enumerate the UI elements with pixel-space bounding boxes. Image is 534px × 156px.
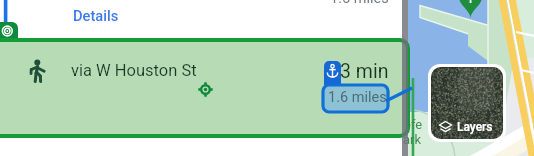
staticText: 1.6 miles xyxy=(328,89,387,106)
button[interactable]: Start location xyxy=(0,22,18,42)
button[interactable] xyxy=(323,85,388,112)
staticText: via W Houston St xyxy=(71,61,197,80)
staticText: efe xyxy=(404,117,423,132)
staticText: 1.5 miles xyxy=(330,0,389,7)
staticText: Details xyxy=(73,7,119,24)
staticText: 3 min xyxy=(340,60,389,83)
button[interactable] xyxy=(0,40,408,136)
staticText: ark xyxy=(403,132,422,147)
button[interactable]: Details xyxy=(73,7,119,24)
button[interactable]: Layers xyxy=(431,67,503,139)
button[interactable]: Ferry xyxy=(324,61,341,85)
staticText: Layers xyxy=(457,120,493,134)
